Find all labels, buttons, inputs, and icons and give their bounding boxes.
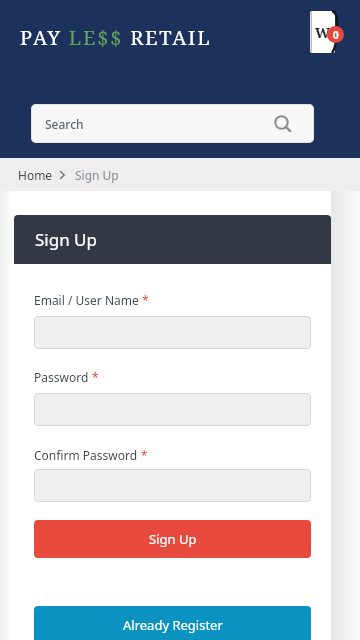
staticText: Home (18, 167, 53, 183)
button[interactable] (34, 316, 311, 349)
staticText: 0 (333, 28, 339, 42)
button[interactable]: Search (31, 104, 314, 143)
staticText: PAY LE$$ RETAIL (20, 24, 212, 51)
staticText: Confirm Password (34, 447, 141, 463)
button[interactable]: W (308, 10, 348, 56)
button[interactable]: Already Register (34, 606, 311, 640)
staticText: Sign Up (75, 167, 119, 183)
button[interactable] (34, 469, 311, 502)
staticText: * (142, 292, 149, 308)
staticText: Password (34, 369, 92, 385)
staticText: * (92, 369, 99, 385)
staticText: Email / User Name (34, 292, 142, 308)
staticText: Sign Up (149, 530, 197, 548)
button[interactable]: Home (18, 167, 53, 183)
staticText: Search (45, 116, 84, 132)
staticText: * (141, 447, 148, 463)
staticText: Sign Up (35, 228, 97, 251)
button[interactable] (34, 393, 311, 426)
staticText: W (315, 23, 330, 42)
button[interactable]: Sign Up (34, 520, 311, 558)
staticText: Already Register (123, 616, 223, 634)
